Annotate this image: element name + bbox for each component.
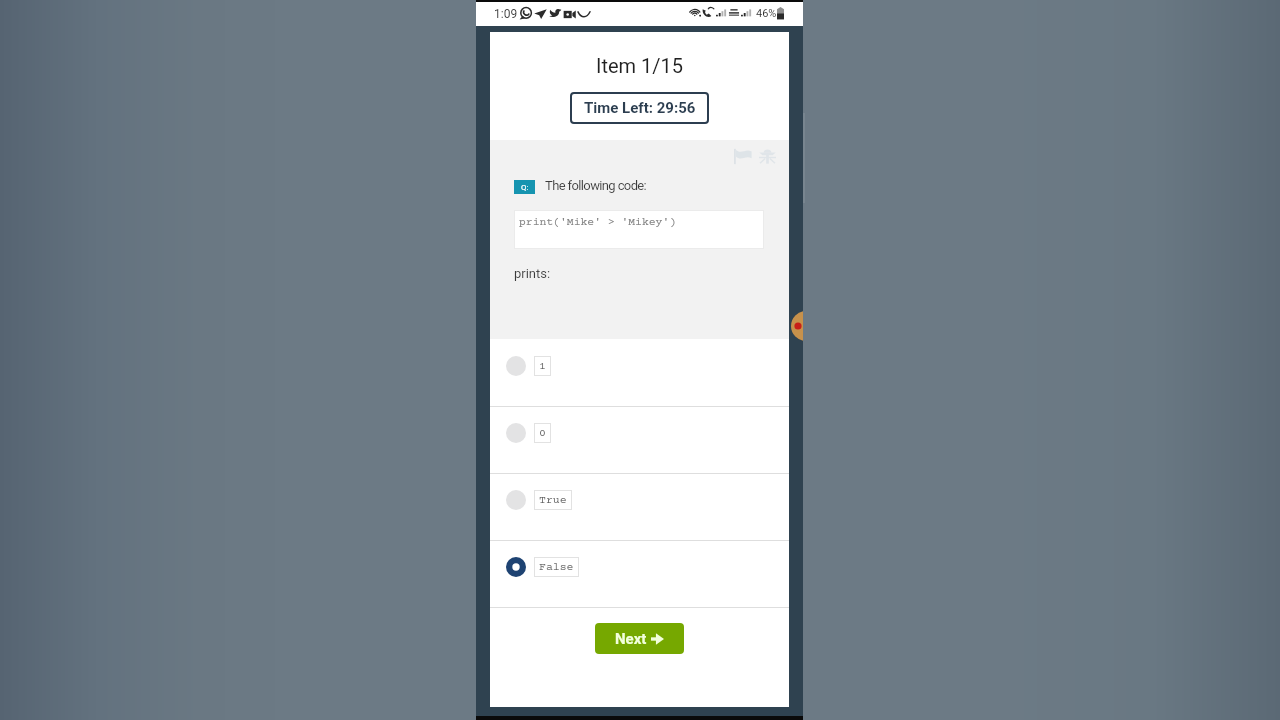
staticText: 1 [539, 360, 546, 373]
staticText: Q: [521, 183, 529, 192]
button[interactable]: Report a bug [759, 148, 776, 165]
button[interactable]: Flag question [734, 148, 754, 165]
button[interactable]: Next [595, 623, 684, 654]
button[interactable]: 1 [490, 340, 789, 407]
staticText: 0 [539, 427, 546, 440]
button[interactable]: False [490, 541, 789, 608]
staticText: prints: [514, 266, 551, 281]
staticText: False [539, 561, 574, 574]
staticText: True [539, 494, 567, 507]
button[interactable]: 0 [490, 407, 789, 474]
staticText: print('Mike' > 'Mikey') [519, 216, 677, 229]
staticText: The following code: [545, 178, 647, 193]
button[interactable]: True [490, 474, 789, 541]
button[interactable]: Time Left: 29:56 [570, 92, 709, 124]
staticText: 46% [756, 7, 777, 20]
staticText: Time Left: 29:56 [584, 99, 696, 117]
staticText: 1:09 [494, 7, 518, 21]
staticText: Item 1/15 [490, 54, 789, 77]
staticText: Next [615, 630, 647, 648]
